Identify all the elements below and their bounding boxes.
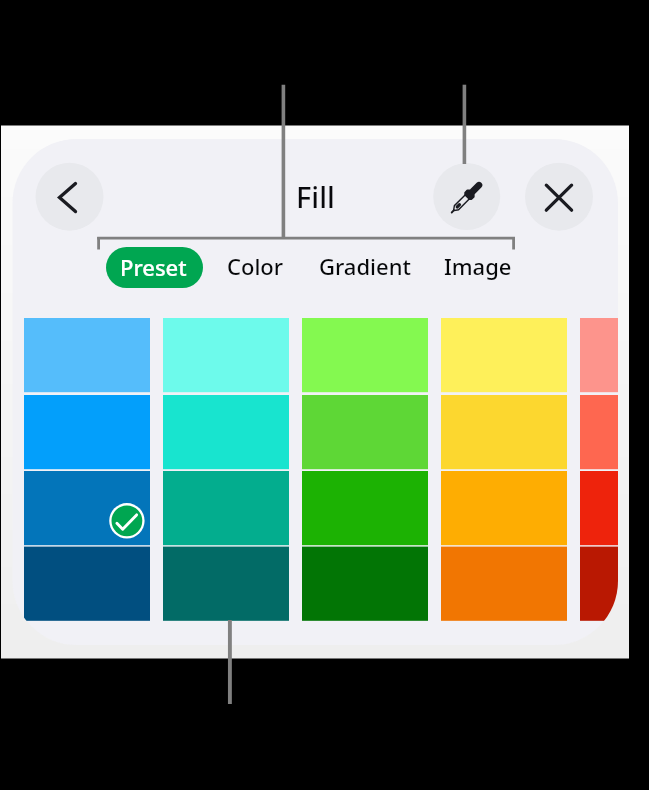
button[interactable]: Color swatch: [302, 547, 428, 621]
button[interactable]: Color swatch: [580, 547, 649, 621]
button[interactable]: Color swatch: [580, 318, 649, 392]
staticText: Color: [227, 251, 284, 281]
staticText: Fill: [296, 177, 335, 211]
staticText: Preset: [120, 252, 187, 282]
button[interactable]: Color swatch: [24, 547, 150, 621]
button[interactable]: Color swatch: [441, 547, 567, 621]
staticText: Image: [444, 251, 512, 281]
button[interactable]: Back: [36, 163, 104, 231]
button[interactable]: Color swatch: [580, 471, 649, 545]
button[interactable]: Preset: [106, 247, 203, 288]
button[interactable]: Color swatch: [163, 547, 289, 621]
button[interactable]: Color: [197, 248, 313, 284]
button[interactable]: Close: [525, 163, 593, 231]
button[interactable]: Image: [420, 248, 536, 284]
staticText: Gradient: [319, 251, 411, 281]
button[interactable]: Eyedropper: [433, 163, 500, 230]
button[interactable]: Gradient: [307, 248, 423, 284]
button[interactable]: Color swatch: [24, 471, 150, 545]
button[interactable]: Color swatch: [580, 395, 649, 469]
